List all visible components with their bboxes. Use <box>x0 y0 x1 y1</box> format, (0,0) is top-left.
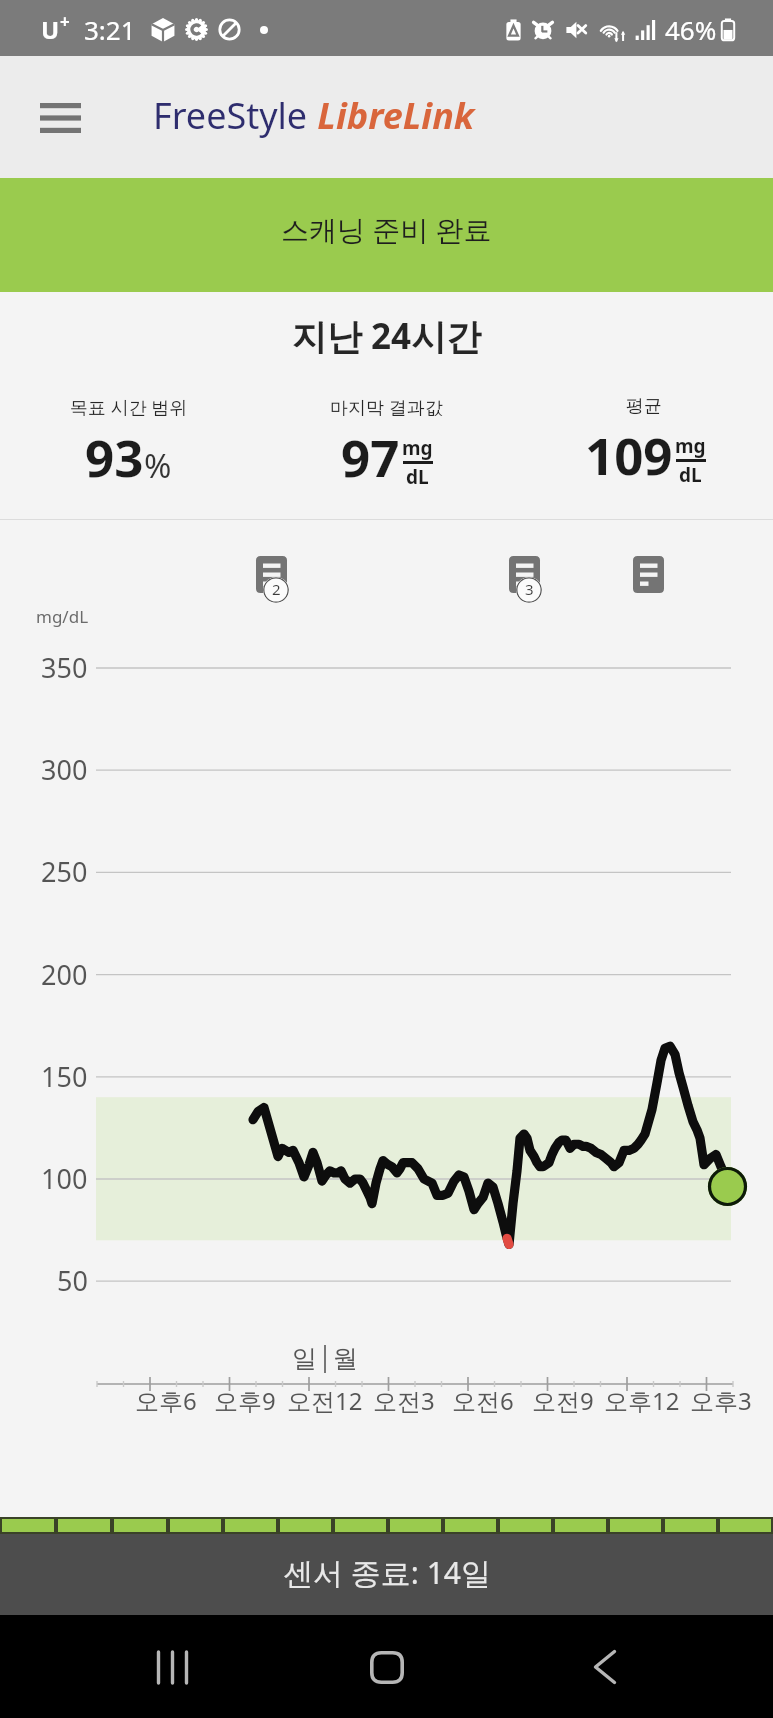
staticText: LibreLink <box>308 91 475 140</box>
button[interactable]: 마지막 결과값 <box>257 395 515 491</box>
button[interactable]: 스캐닝 준비 완료 <box>0 178 773 292</box>
staticText: 오전9 <box>532 1384 594 1417</box>
staticText: 150 <box>41 1058 88 1095</box>
staticText: 50 <box>57 1262 88 1299</box>
staticText: mg <box>675 433 706 459</box>
button[interactable]: Back <box>573 1635 637 1699</box>
staticText: 오후6 <box>135 1384 197 1417</box>
staticText: 2 <box>272 579 281 599</box>
button[interactable]: Menu <box>28 85 92 149</box>
button[interactable]: Notes <box>256 556 290 594</box>
staticText: 250 <box>41 853 88 890</box>
staticText: 마지막 결과값 <box>330 395 443 420</box>
staticText: 오후9 <box>214 1384 276 1417</box>
staticText: 평균 <box>626 395 662 418</box>
staticText: 오후3 <box>690 1384 752 1417</box>
button[interactable]: 평균 <box>515 395 773 489</box>
staticText: FreeStyle <box>153 91 308 140</box>
staticText: 오후12 <box>604 1384 680 1417</box>
staticText: dL <box>406 464 429 490</box>
staticText: 센서 종료: 14일 <box>283 1552 491 1593</box>
staticText: 300 <box>41 751 88 788</box>
staticText: 350 <box>41 649 88 686</box>
staticText: 목표 시간 범위 <box>70 395 188 420</box>
staticText: 200 <box>41 956 88 993</box>
staticText: 스캐닝 준비 완료 <box>281 210 492 248</box>
staticText: dL <box>679 462 702 488</box>
staticText: 오전6 <box>452 1384 514 1417</box>
button[interactable]: Notes <box>633 556 667 594</box>
staticText: 93 <box>85 422 144 491</box>
staticText: 지난 24시간 <box>292 312 482 360</box>
button[interactable]: Notes <box>509 556 543 594</box>
button[interactable]: 목표 시간 범위 <box>0 395 257 491</box>
staticText: mg/dL <box>36 605 89 628</box>
button[interactable]: Home <box>355 1635 419 1699</box>
staticText: 3:21 <box>84 12 136 47</box>
staticText: 일 <box>292 1343 317 1374</box>
staticText: 월 <box>333 1343 358 1374</box>
staticText: + <box>60 10 70 33</box>
staticText: 오전3 <box>373 1384 435 1417</box>
staticText: 오전12 <box>287 1384 363 1417</box>
staticText: mg <box>402 435 433 461</box>
button[interactable]: 센서 종료: 14일 <box>0 1534 773 1615</box>
staticText: 100 <box>41 1160 88 1197</box>
button[interactable]: Recents <box>140 1635 204 1699</box>
staticText: 109 <box>585 420 673 489</box>
staticText: 46% <box>665 12 717 47</box>
staticText: 3 <box>525 579 534 599</box>
staticText: 97 <box>341 422 400 491</box>
staticText: % <box>144 443 172 488</box>
staticText: U <box>41 13 60 46</box>
